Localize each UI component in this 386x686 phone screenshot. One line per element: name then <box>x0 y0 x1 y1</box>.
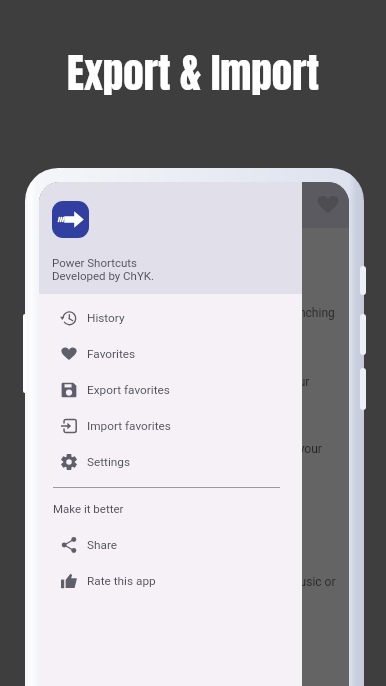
staticText: Rate this app <box>87 574 156 588</box>
staticText: favourite places right from your <box>155 442 349 456</box>
staticText: Share <box>87 538 118 552</box>
button[interactable]: Favorites <box>39 336 302 372</box>
staticText: History <box>87 311 125 325</box>
button[interactable]: History <box>39 300 302 336</box>
button[interactable]: Settings <box>39 444 302 480</box>
staticText: Export favorites <box>87 383 170 397</box>
staticText: Quickly jump to music or <box>204 575 349 589</box>
button[interactable]: Import favorites <box>39 408 302 444</box>
staticText: home screen. <box>231 531 349 545</box>
staticText: Create shortcuts for launching <box>173 306 349 320</box>
button[interactable]: Share <box>39 527 302 563</box>
staticText: Power Shortcuts <box>52 256 137 269</box>
staticText: Export & Import <box>0 42 386 104</box>
button[interactable]: Favorites <box>317 194 339 216</box>
staticText: apps, contacts, settings and your <box>134 375 334 389</box>
button[interactable]: Rate this app <box>39 563 302 599</box>
staticText: Favorites <box>87 347 136 361</box>
staticText: Import favorites <box>87 419 171 433</box>
staticText: Developed by ChYK. <box>52 269 155 282</box>
staticText: Make it better <box>53 502 124 515</box>
staticText: Settings <box>87 455 131 469</box>
button[interactable]: Export favorites <box>39 372 302 408</box>
